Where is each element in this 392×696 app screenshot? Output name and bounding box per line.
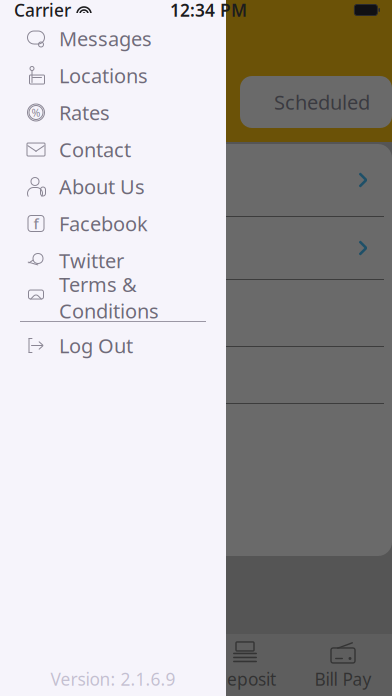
staticText: Bill Pay [314,667,371,690]
button[interactable]: Bill Pay [294,634,392,696]
staticText: Version: 2.1.6.9 [50,667,175,690]
button[interactable]: Twitter [0,242,226,279]
staticText: f [33,214,38,233]
button[interactable]: Contact [0,131,226,168]
staticText: Facebook [59,210,148,237]
staticText: Terms & Conditions [59,271,159,324]
button[interactable]: % [0,94,226,131]
staticText: Twitter [59,247,124,274]
button[interactable]: f [0,205,226,242]
button[interactable]: Locations [0,57,226,94]
staticText: Carrier [14,0,71,21]
staticText: 12:34 PM [170,0,247,21]
button[interactable]: Deposit [196,634,294,696]
button[interactable]: Terms & Conditions [0,279,226,316]
staticText: Log Out [59,332,133,359]
button[interactable]: About Us [0,168,226,205]
staticText: Deposit [214,667,276,690]
button[interactable]: Messages [0,20,226,57]
staticText: Contact [59,136,131,163]
staticText: About Us [59,173,145,200]
staticText: Messages [59,25,152,52]
staticText: % [31,105,40,120]
button[interactable]: Log Out [0,327,226,364]
staticText: Scheduled [274,89,370,115]
staticText: Locations [59,62,148,89]
staticText: Rates [59,99,110,126]
